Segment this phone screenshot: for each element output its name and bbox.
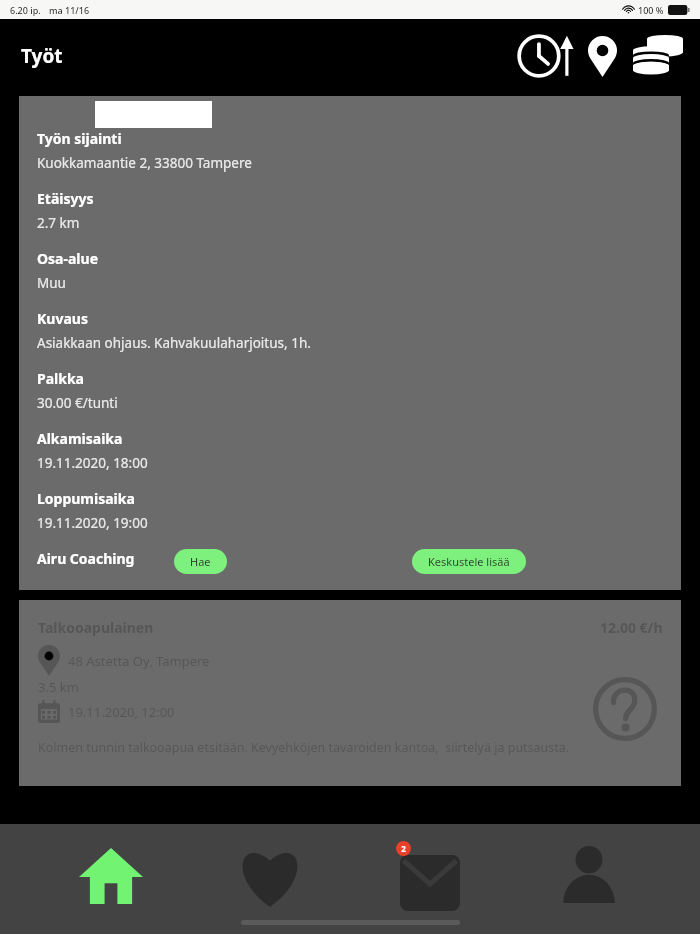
staticText: 2.7 km: [37, 214, 80, 232]
staticText: Osa-alue: [37, 249, 98, 268]
staticText: Asiakkaan ohjaus. Kahvakuulaharjoitus, 1…: [37, 334, 311, 352]
staticText: Etäisyys: [37, 189, 94, 208]
staticText: ma 11/16: [49, 4, 90, 16]
button[interactable]: Favorites: [222, 838, 318, 914]
staticText: Loppumisaika: [37, 489, 135, 508]
staticText: Palkka: [37, 369, 84, 388]
staticText: 30.00 €/tunti: [37, 394, 118, 412]
button[interactable]: Home: [63, 838, 159, 914]
staticText: 2: [401, 843, 406, 854]
button[interactable]: Profile: [541, 838, 637, 914]
staticText: 3.5 km: [38, 678, 79, 696]
button[interactable]: Sort by pay: [630, 32, 686, 80]
button[interactable]: Talkooapulainen: [19, 600, 681, 786]
staticText: Hae: [190, 554, 211, 569]
button[interactable]: Sort by time: [516, 32, 578, 80]
staticText: 19.11.2020, 12:00: [68, 703, 175, 721]
staticText: Työt: [21, 43, 63, 69]
staticText: 19.11.2020, 18:00: [37, 454, 148, 472]
staticText: 12.00 €/h: [600, 618, 663, 637]
staticText: 6.20 ip.: [10, 4, 41, 16]
staticText: 19.11.2020, 19:00: [37, 514, 148, 532]
staticText: Keskustele lisää: [428, 554, 510, 569]
staticText: Alkamisaika: [37, 429, 123, 448]
button[interactable]: Hae: [174, 549, 227, 574]
staticText: Talkooapulainen: [38, 618, 154, 637]
staticText: Kuokkamaantie 2, 33800 Tampere: [37, 154, 252, 172]
staticText: Kuvaus: [37, 309, 88, 328]
button[interactable]: Työn sijainti: [19, 96, 681, 590]
staticText: Airu Coaching: [37, 549, 135, 568]
button[interactable]: Sort by location: [580, 32, 624, 80]
button[interactable]: Messages, 2 unread: [382, 838, 478, 914]
button[interactable]: Keskustele lisää: [412, 549, 526, 574]
staticText: Muu: [37, 274, 66, 292]
staticText: 100 %: [638, 4, 664, 16]
staticText: 48 Astetta Oy, Tampere: [68, 652, 210, 670]
staticText: Kolmen tunnin talkooapua etsitään. Kevye…: [38, 739, 570, 756]
staticText: Työn sijainti: [37, 129, 122, 148]
